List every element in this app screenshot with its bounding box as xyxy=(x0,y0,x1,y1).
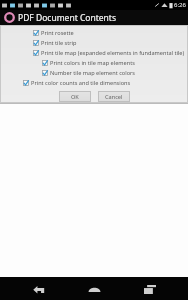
button[interactable]: Print color counts and tile dimensions xyxy=(0,78,188,88)
button[interactable]: Print tile map (expanded elements in fun… xyxy=(0,48,188,58)
button[interactable]: Cancel xyxy=(98,91,130,102)
staticText: Cancel xyxy=(105,93,123,101)
staticText: Print colors in tile map elements xyxy=(50,59,135,67)
staticText: Print tile strip xyxy=(41,39,77,47)
button[interactable]: OK xyxy=(59,91,91,102)
button[interactable]: Print colors in tile map elements xyxy=(0,58,188,68)
staticText: PDF Document Contents xyxy=(18,12,116,24)
staticText: Print color counts and tile dimensions xyxy=(31,79,131,87)
staticText: Print tile map (expanded elements in fun… xyxy=(41,49,185,57)
button[interactable]: Home xyxy=(77,279,111,299)
staticText: 6:26 xyxy=(174,1,186,9)
button[interactable]: Print rosette xyxy=(0,28,188,38)
staticText: OK xyxy=(71,93,79,101)
button[interactable]: Number tile map element colors xyxy=(0,68,188,78)
button[interactable]: Recent apps xyxy=(133,279,167,299)
staticText: Print rosette xyxy=(41,29,74,37)
button[interactable]: Print tile strip xyxy=(0,38,188,48)
staticText: Number tile map element colors xyxy=(50,69,136,77)
button[interactable]: Back xyxy=(22,279,56,299)
